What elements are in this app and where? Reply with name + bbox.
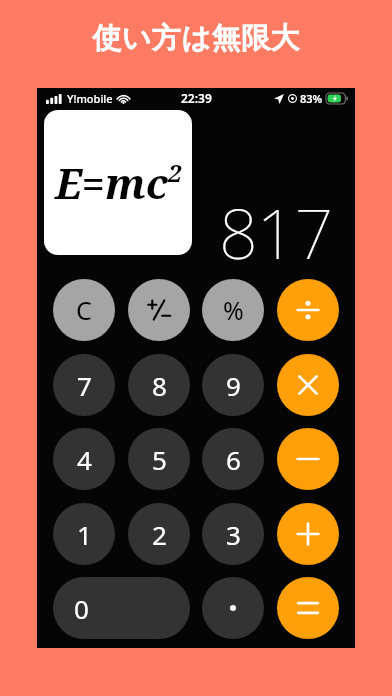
staticText: 3	[226, 517, 241, 552]
staticText: %	[223, 293, 244, 327]
button[interactable]: C	[53, 279, 115, 341]
button[interactable]	[128, 279, 190, 341]
button[interactable]: 6	[202, 428, 264, 490]
staticText: C	[76, 293, 92, 327]
button[interactable]: 4	[53, 428, 115, 490]
staticText: 8	[152, 368, 167, 403]
button[interactable]	[277, 428, 339, 490]
button[interactable]	[202, 577, 264, 639]
button[interactable]: 0	[53, 577, 190, 639]
button[interactable]: 1	[53, 503, 115, 565]
staticText: 9	[226, 368, 241, 403]
button[interactable]: 8	[128, 354, 190, 416]
staticText: E=mc	[55, 154, 168, 211]
button[interactable]: 2	[128, 503, 190, 565]
button[interactable]: %	[202, 279, 264, 341]
staticText: 7	[77, 368, 92, 403]
button[interactable]: 9	[202, 354, 264, 416]
staticText: 4	[77, 442, 92, 477]
button[interactable]: 3	[202, 503, 264, 565]
staticText: 817	[219, 186, 333, 279]
staticText: 0	[74, 591, 89, 626]
staticText: 22:39	[181, 90, 212, 106]
staticText: Y!mobile	[67, 91, 113, 106]
staticText: 83%	[300, 91, 323, 106]
staticText: 5	[152, 442, 167, 477]
staticText: 1	[77, 517, 92, 552]
button[interactable]: E equals m c squared	[44, 110, 192, 255]
button[interactable]	[277, 503, 339, 565]
button[interactable]	[277, 354, 339, 416]
button[interactable]: 7	[53, 354, 115, 416]
button[interactable]: 5	[128, 428, 190, 490]
staticText: 使い方は無限大	[92, 20, 300, 57]
staticText: 6	[226, 442, 241, 477]
button[interactable]	[277, 279, 339, 341]
staticText: 2	[168, 156, 182, 189]
button[interactable]	[277, 577, 339, 639]
staticText: 2	[152, 517, 167, 552]
